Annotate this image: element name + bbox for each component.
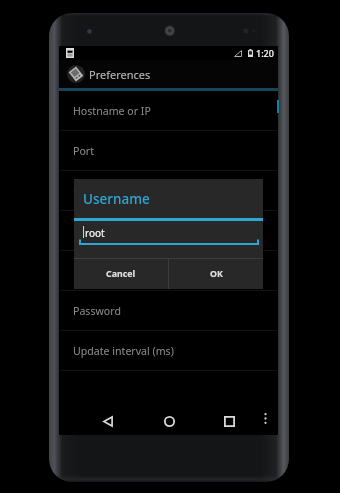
button[interactable]: Back xyxy=(94,407,122,435)
staticText: Encryption xyxy=(73,224,127,238)
staticText: Password xyxy=(73,304,121,318)
button[interactable]: Port xyxy=(59,131,278,171)
button[interactable]: Home xyxy=(155,407,183,435)
staticText: Port xyxy=(73,144,95,158)
button[interactable]: Cancel xyxy=(74,259,168,289)
staticText: Cancel xyxy=(106,268,136,280)
staticText: Username xyxy=(73,184,125,198)
button[interactable]: Hostname or IP xyxy=(59,91,278,131)
staticText: OK xyxy=(210,268,223,280)
button[interactable]: Protocol xyxy=(59,251,278,291)
button[interactable]: Recents xyxy=(215,407,243,435)
button[interactable]: Username xyxy=(59,171,278,211)
staticText: root xyxy=(85,226,105,240)
button[interactable]: More options xyxy=(254,407,276,429)
staticText: Protocol xyxy=(73,264,115,278)
staticText: 1:20 xyxy=(256,47,274,59)
staticText: Preferences xyxy=(89,67,151,82)
button[interactable]: Encryption xyxy=(59,211,278,251)
button[interactable]: Update interval (ms) xyxy=(59,331,278,371)
button[interactable]: Password xyxy=(59,291,278,331)
staticText: Hostname or IP xyxy=(73,104,151,118)
staticText: Username xyxy=(83,190,150,208)
staticText: Update interval (ms) xyxy=(73,344,174,358)
button[interactable]: OK xyxy=(169,259,263,289)
